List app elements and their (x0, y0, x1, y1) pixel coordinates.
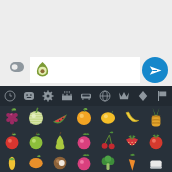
button[interactable]: Travel (76, 86, 95, 106)
button[interactable]: Recent (0, 86, 19, 106)
button[interactable]: Smileys (19, 86, 38, 106)
button[interactable]: Send (142, 57, 168, 83)
button[interactable]: peach (72, 130, 96, 154)
button[interactable]: banana (120, 106, 144, 130)
button[interactable]: coconut (48, 154, 72, 172)
button[interactable]: Symbols (133, 86, 152, 106)
button[interactable] (30, 57, 140, 83)
button[interactable]: watermelon (48, 106, 72, 130)
button[interactable]: apple_green (24, 130, 48, 154)
button[interactable]: Flags (152, 86, 171, 106)
button[interactable]: Activities (114, 86, 133, 106)
button[interactable]: tomato (144, 130, 168, 154)
button[interactable]: Places (95, 86, 114, 106)
button[interactable]: peach (72, 154, 96, 172)
button[interactable]: melon (24, 106, 48, 130)
button[interactable]: rice (144, 154, 168, 172)
button[interactable]: Toggle keyboard (10, 62, 24, 72)
button[interactable]: Food (57, 86, 76, 106)
button[interactable]: apple_red (0, 130, 24, 154)
button[interactable]: corn (0, 154, 24, 172)
button[interactable]: lemon (96, 106, 120, 130)
button[interactable]: mango (24, 154, 48, 172)
button[interactable]: cherries (96, 130, 120, 154)
button[interactable]: strawberry (120, 130, 144, 154)
button[interactable]: pineapple (144, 106, 168, 130)
button[interactable]: pear (48, 130, 72, 154)
button[interactable]: tangerine (72, 106, 96, 130)
button[interactable]: carrot (120, 154, 144, 172)
button[interactable]: Objects (38, 86, 57, 106)
button[interactable]: broccoli (96, 154, 120, 172)
button[interactable]: grapes (0, 106, 24, 130)
